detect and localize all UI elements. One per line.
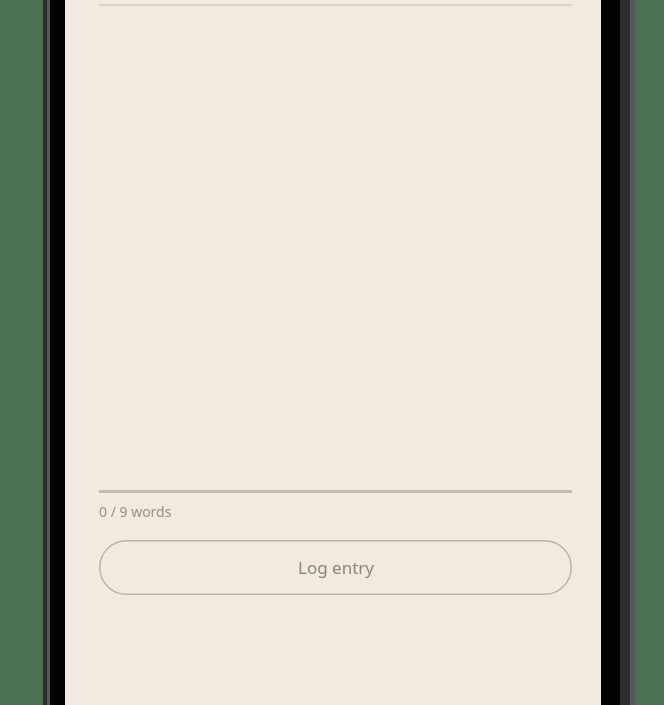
staticText: Log entry [298,556,374,579]
button[interactable]: Log entry [99,540,572,595]
staticText: 0 / 9 words [99,502,172,521]
